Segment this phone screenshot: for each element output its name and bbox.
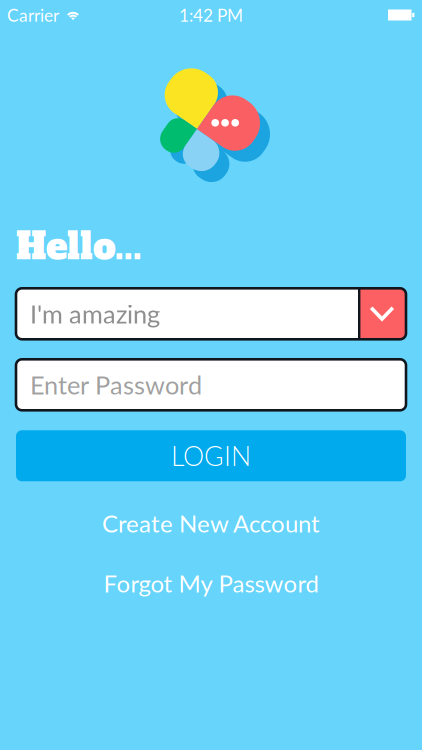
staticText: 1:42 PM xyxy=(179,5,243,25)
button[interactable]: Create New Account xyxy=(16,509,406,537)
button[interactable]: Forgot My Password xyxy=(16,569,406,597)
staticText: LOGIN xyxy=(171,440,251,472)
staticText: Forgot My Password xyxy=(103,569,318,598)
staticText: Create New Account xyxy=(102,509,320,538)
staticText: Hello... xyxy=(16,222,142,271)
button[interactable]: Show account options xyxy=(358,288,406,339)
button[interactable]: LOGIN xyxy=(16,430,406,481)
staticText: Carrier xyxy=(7,5,59,25)
button[interactable]: Enter Password xyxy=(16,359,406,410)
staticText: Enter Password xyxy=(30,370,202,400)
staticText: I'm amazing xyxy=(30,299,160,329)
